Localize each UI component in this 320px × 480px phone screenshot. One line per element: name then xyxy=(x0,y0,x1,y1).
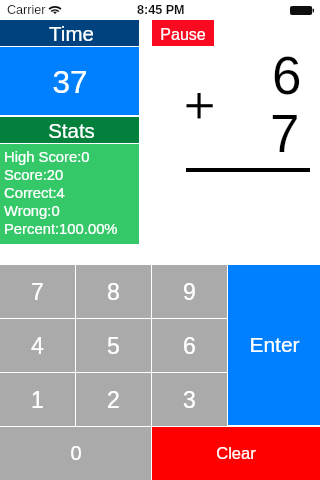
button[interactable]: 4 xyxy=(0,319,75,372)
staticText: Carrier xyxy=(7,3,46,17)
button[interactable]: 6 xyxy=(152,319,227,372)
button[interactable]: 5 xyxy=(76,319,151,372)
button[interactable]: 9 xyxy=(152,265,227,318)
button[interactable]: 8 xyxy=(76,265,151,318)
staticText: 6 xyxy=(183,333,196,359)
button[interactable]: Time xyxy=(0,20,139,46)
staticText: Correct:4 xyxy=(4,185,65,203)
button[interactable]: 7 xyxy=(0,265,75,318)
staticText: 7 xyxy=(31,279,44,305)
button[interactable]: Clear xyxy=(152,427,320,480)
staticText: 5 xyxy=(107,333,120,359)
staticText: 7 xyxy=(270,104,300,163)
button[interactable]: 37 xyxy=(0,47,139,115)
staticText: Time xyxy=(49,22,94,45)
button[interactable]: 2 xyxy=(76,373,151,426)
staticText: 4 xyxy=(31,333,44,359)
staticText: 8 xyxy=(107,279,120,305)
staticText: Clear xyxy=(216,444,256,462)
staticText: Enter xyxy=(249,333,300,356)
staticText: High Score:0 xyxy=(4,149,90,167)
staticText: 8:45 PM xyxy=(137,3,185,17)
staticText: 37 xyxy=(52,64,88,99)
other: Battery full xyxy=(290,6,314,15)
staticText: Score:20 xyxy=(4,167,64,185)
staticText: Pause xyxy=(160,26,206,44)
staticText: 2 xyxy=(107,387,120,413)
button[interactable]: 0 xyxy=(0,427,151,480)
button[interactable]: 1 xyxy=(0,373,75,426)
staticText: 1 xyxy=(31,387,44,413)
staticText: 6 xyxy=(272,46,302,105)
staticText: Percent:100.00% xyxy=(4,221,118,239)
staticText: 9 xyxy=(183,279,196,305)
staticText: Wrong:0 xyxy=(4,203,60,221)
other: Wi-Fi signal xyxy=(49,5,61,15)
button[interactable]: Pause xyxy=(152,20,214,46)
staticText: Stats xyxy=(48,119,95,142)
staticText: 0 xyxy=(70,442,82,464)
staticText: 3 xyxy=(183,387,196,413)
button[interactable]: Stats xyxy=(0,117,139,143)
button[interactable]: Enter xyxy=(228,265,320,425)
button[interactable]: 3 xyxy=(152,373,227,426)
